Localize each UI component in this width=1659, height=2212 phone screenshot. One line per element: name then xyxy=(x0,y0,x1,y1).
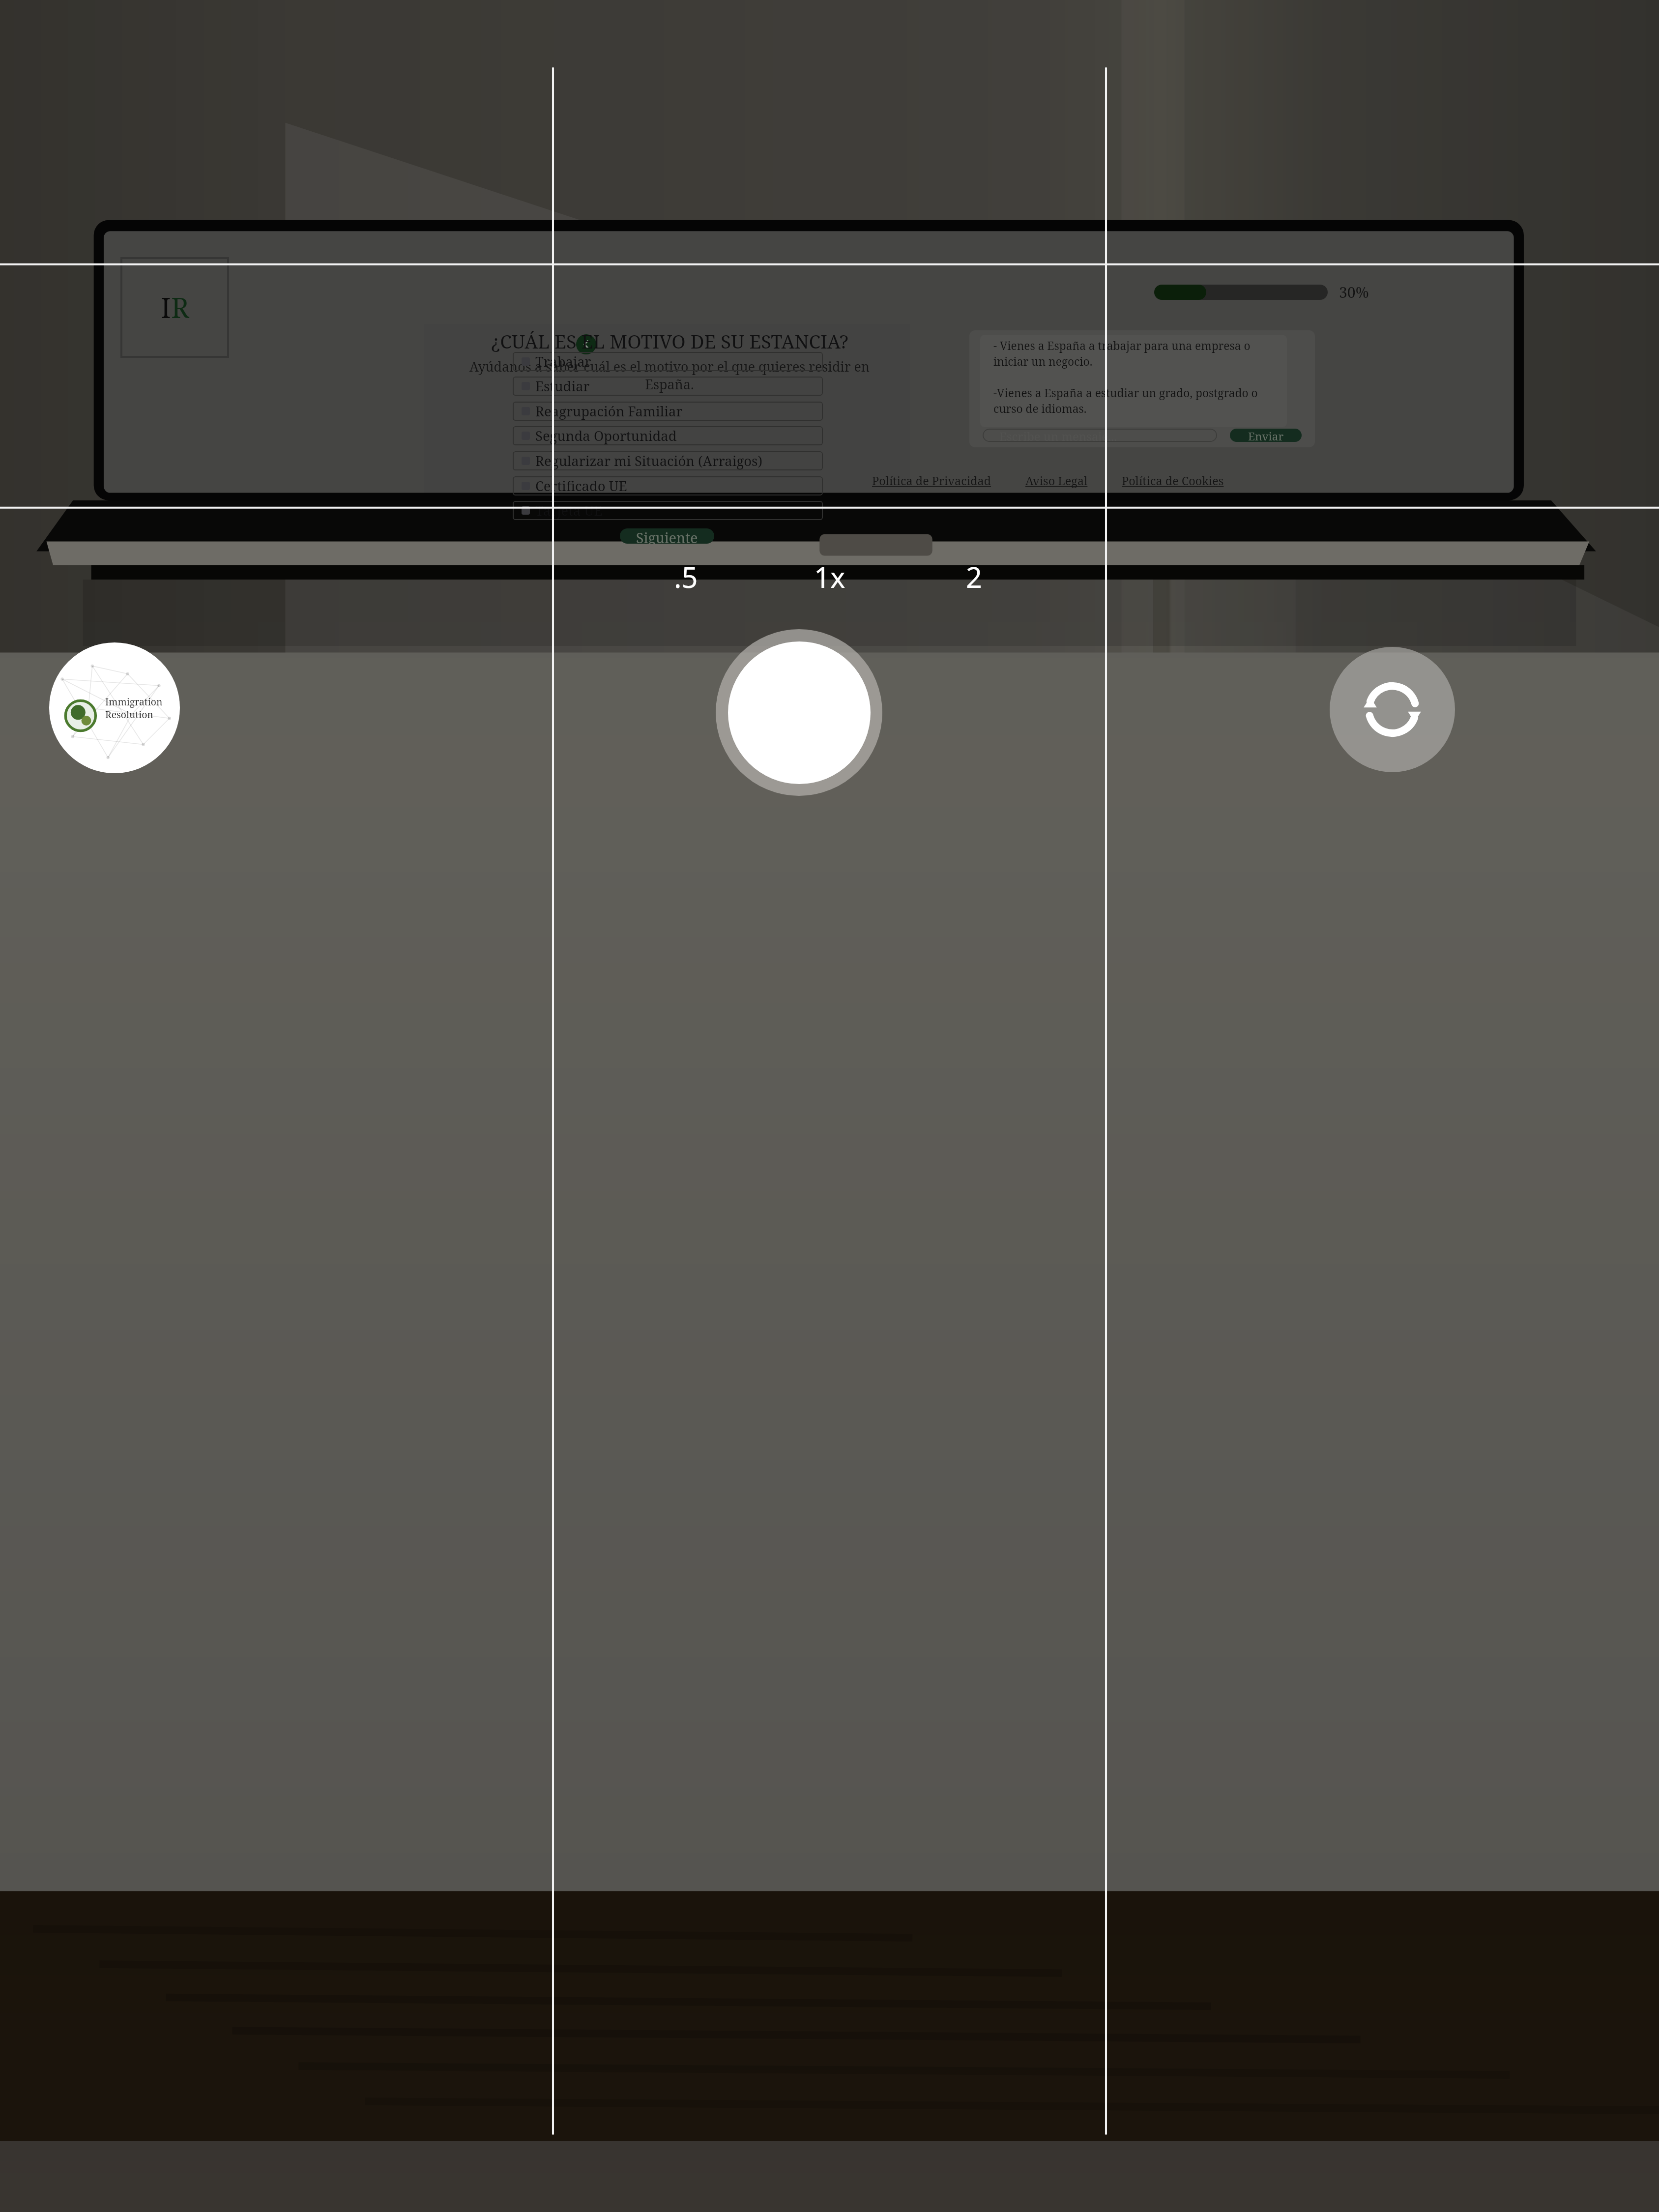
staticText: Certificado UE xyxy=(535,477,627,495)
button[interactable]: Last photo xyxy=(49,642,180,773)
button[interactable]: Política de Privacidad xyxy=(872,473,991,489)
button[interactable]: Escribe un mensaje... xyxy=(983,429,1217,442)
button[interactable]: Estudiar xyxy=(513,377,823,396)
staticText: 1x xyxy=(814,557,845,596)
staticText: Escribe un mensaje... xyxy=(999,429,1117,442)
button[interactable]: Enviar xyxy=(1230,429,1302,442)
staticText: Política de Privacidad xyxy=(872,473,991,489)
staticText: Resolution xyxy=(105,708,153,721)
button[interactable]: Reagrupación Familiar xyxy=(513,402,823,421)
button[interactable]: .5 xyxy=(655,552,717,601)
staticText: Tarjeta UE xyxy=(535,501,603,520)
button[interactable]: Switch camera xyxy=(1330,647,1455,772)
button[interactable]: Certificado UE xyxy=(513,476,823,495)
staticText: Política de Cookies xyxy=(1122,473,1224,489)
staticText: Regularizar mi Situación (Arraigos) xyxy=(535,452,762,470)
staticText: - Vienes a España a trabajar para una em… xyxy=(993,338,1274,424)
staticText: Aviso Legal xyxy=(1025,473,1088,489)
button[interactable]: Segunda Oportunidad xyxy=(513,426,823,445)
staticText: Estudiar xyxy=(535,377,590,395)
button[interactable]: I xyxy=(120,257,229,358)
button[interactable]: Siguiente xyxy=(620,528,714,544)
staticText: I xyxy=(161,289,171,326)
staticText: .5 xyxy=(674,557,698,596)
staticText: Ayúdanos a saber cuál es el motivo por e… xyxy=(464,357,875,393)
button[interactable]: Tarjeta UE xyxy=(513,501,823,520)
button[interactable]: Trabajar xyxy=(513,352,823,371)
button[interactable]: 2 xyxy=(943,552,1005,601)
button[interactable]: Regularizar mi Situación (Arraigos) xyxy=(513,451,823,470)
staticText: Trabajar xyxy=(535,352,591,371)
staticText: Segunda Oportunidad xyxy=(535,427,677,445)
button[interactable]: 1x xyxy=(799,552,861,601)
staticText: Enviar xyxy=(1248,429,1284,442)
button[interactable]: Take photo xyxy=(716,629,882,796)
staticText: 30% xyxy=(1339,282,1369,302)
staticText: Siguiente xyxy=(636,528,698,544)
button[interactable]: Política de Cookies xyxy=(1122,473,1224,489)
staticText: 2 xyxy=(966,557,982,596)
button[interactable]: Back xyxy=(576,334,596,354)
staticText: R xyxy=(171,289,189,326)
staticText: ¿CUÁL ES EL MOTIVO DE SU ESTANCIA? xyxy=(491,328,848,354)
staticText: Immigration xyxy=(105,695,163,708)
staticText: Reagrupación Familiar xyxy=(535,402,683,420)
button[interactable]: Aviso Legal xyxy=(1025,473,1088,489)
